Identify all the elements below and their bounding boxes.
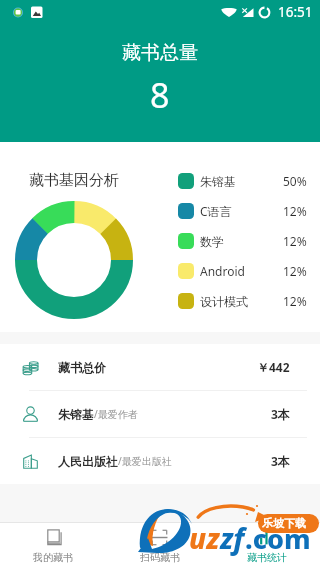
button[interactable]: 藏书总价 [0, 344, 320, 390]
staticText: /最爱出版社 [118, 454, 172, 468]
staticText: 朱镕基 [58, 407, 94, 422]
staticText: 朱镕基 [200, 174, 236, 189]
staticText: 数学 [200, 234, 224, 249]
button[interactable]: 朱镕基 [0, 391, 320, 437]
staticText: C语言 [200, 203, 232, 219]
staticText: ￥442 [257, 359, 290, 375]
staticText: 藏书总价 [58, 360, 106, 375]
staticText: 3本 [271, 406, 290, 422]
staticText: 8 [150, 72, 170, 118]
button[interactable]: Scan [106, 523, 213, 569]
staticText: 设计模式 [200, 294, 248, 309]
staticText: uz [189, 519, 220, 557]
staticText: 12% [283, 263, 307, 279]
staticText: 我的藏书 [33, 551, 73, 564]
staticText: 藏书总量 [122, 41, 198, 65]
staticText: 乐坡下载 [262, 516, 306, 530]
staticText: 3本 [271, 453, 290, 469]
staticText: 12% [283, 203, 307, 219]
staticText: .com [245, 520, 311, 557]
staticText: 12% [283, 293, 307, 309]
button[interactable]: Statistics [213, 523, 320, 569]
staticText: 16:51 [278, 3, 313, 21]
staticText: 藏书基因分析 [29, 171, 119, 190]
button[interactable]: 人民出版社 [0, 438, 320, 484]
button[interactable]: My books [0, 523, 106, 569]
staticText: zf [220, 519, 245, 557]
staticText: 扫码藏书 [140, 551, 180, 564]
staticText: 50% [283, 173, 307, 189]
staticText: /最爱作者 [94, 407, 138, 421]
staticText: 12% [283, 233, 307, 249]
staticText: 藏书统计 [247, 551, 287, 564]
staticText: Android [200, 263, 245, 279]
staticText: 人民出版社 [58, 454, 118, 469]
